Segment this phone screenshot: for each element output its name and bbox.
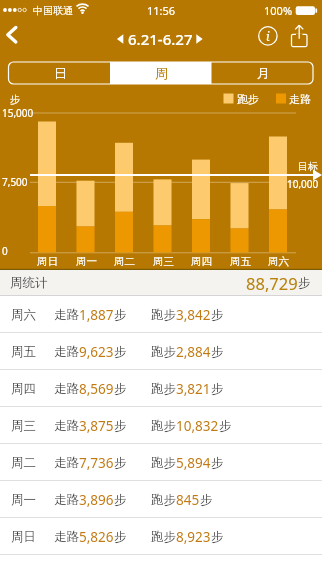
- staticText: 跑步: [237, 92, 259, 105]
- button[interactable]: 周六: [0, 296, 322, 333]
- staticText: 中国联通: [33, 4, 73, 17]
- staticText: 月: [257, 65, 270, 81]
- staticText: 步: [114, 381, 127, 397]
- staticText: 周五: [230, 255, 251, 268]
- staticText: 步: [114, 492, 127, 508]
- staticText: 周日: [37, 255, 58, 268]
- staticText: 跑步: [151, 455, 176, 471]
- staticText: 周三: [153, 255, 174, 268]
- staticText: 周五: [11, 344, 36, 360]
- button[interactable]: 周二: [0, 444, 322, 481]
- button[interactable]: 日: [9, 62, 111, 84]
- button[interactable]: 周一: [0, 481, 322, 518]
- button[interactable]: [250, 22, 284, 54]
- button[interactable]: 周三: [0, 407, 322, 444]
- staticText: i: [266, 28, 270, 44]
- staticText: 3,875: [79, 417, 114, 435]
- staticText: 跑步: [151, 381, 176, 397]
- staticText: 走路: [54, 529, 79, 545]
- staticText: 8,569: [79, 380, 114, 398]
- staticText: 7,500: [2, 175, 28, 189]
- staticText: 步: [114, 418, 127, 434]
- staticText: 5,894: [176, 454, 211, 472]
- staticText: 1,887: [79, 306, 114, 324]
- staticText: 走路: [54, 418, 79, 434]
- staticText: 跑步: [151, 344, 176, 360]
- staticText: 步: [211, 344, 224, 360]
- button[interactable]: [192, 27, 212, 49]
- staticText: 周四: [11, 381, 36, 397]
- staticText: 跑步: [151, 492, 176, 508]
- staticText: 周: [155, 65, 168, 81]
- staticText: 88,729: [246, 272, 298, 294]
- staticText: 步: [211, 381, 224, 397]
- staticText: 周三: [11, 418, 36, 434]
- staticText: 走路: [289, 92, 311, 105]
- staticText: 走路: [54, 344, 79, 360]
- staticText: 步: [114, 529, 127, 545]
- staticText: 3,821: [176, 380, 211, 398]
- staticText: 周二: [114, 255, 135, 268]
- staticText: 11:56: [147, 3, 176, 18]
- staticText: 步: [211, 529, 224, 545]
- staticText: 10,000: [287, 177, 319, 190]
- staticText: 周一: [11, 492, 36, 508]
- button[interactable]: 周日: [0, 518, 322, 555]
- staticText: 步: [211, 307, 224, 323]
- staticText: 7,736: [79, 454, 114, 472]
- staticText: 周日: [11, 529, 36, 545]
- staticText: 跑步: [151, 418, 176, 434]
- staticText: 步: [114, 344, 127, 360]
- button[interactable]: 月: [212, 62, 314, 84]
- staticText: 10,832: [176, 417, 219, 435]
- staticText: 周六: [268, 255, 289, 268]
- staticText: 走路: [54, 307, 79, 323]
- staticText: 周六: [11, 307, 36, 323]
- staticText: 步: [200, 492, 213, 508]
- staticText: 目标: [298, 160, 318, 173]
- staticText: 跑步: [151, 307, 176, 323]
- staticText: 15,000: [2, 106, 34, 120]
- staticText: 3,842: [176, 306, 211, 324]
- staticText: 周统计: [10, 275, 48, 291]
- button[interactable]: [110, 27, 130, 49]
- staticText: 步: [114, 307, 127, 323]
- staticText: 走路: [54, 455, 79, 471]
- staticText: 日: [54, 65, 67, 81]
- staticText: 6.21-6.27: [128, 29, 193, 49]
- staticText: 2,884: [176, 343, 211, 361]
- staticText: 步: [211, 455, 224, 471]
- staticText: 周一: [76, 255, 97, 268]
- button[interactable]: 周五: [0, 333, 322, 370]
- staticText: 周二: [11, 455, 36, 471]
- button[interactable]: [0, 20, 40, 58]
- button[interactable]: 周: [110, 62, 212, 84]
- staticText: 100%: [264, 3, 293, 18]
- staticText: 8,923: [176, 528, 211, 546]
- staticText: 3,896: [79, 491, 114, 509]
- staticText: 5,826: [79, 528, 114, 546]
- button[interactable]: [284, 22, 318, 54]
- staticText: 走路: [54, 381, 79, 397]
- staticText: 845: [176, 491, 200, 509]
- staticText: 步: [10, 93, 20, 106]
- staticText: 跑步: [151, 529, 176, 545]
- staticText: 0: [2, 244, 8, 258]
- staticText: 走路: [54, 492, 79, 508]
- button[interactable]: 周四: [0, 370, 322, 407]
- staticText: 周四: [191, 255, 212, 268]
- staticText: 步: [298, 275, 311, 291]
- staticText: 步: [219, 418, 232, 434]
- staticText: 9,623: [79, 343, 114, 361]
- staticText: 步: [114, 455, 127, 471]
